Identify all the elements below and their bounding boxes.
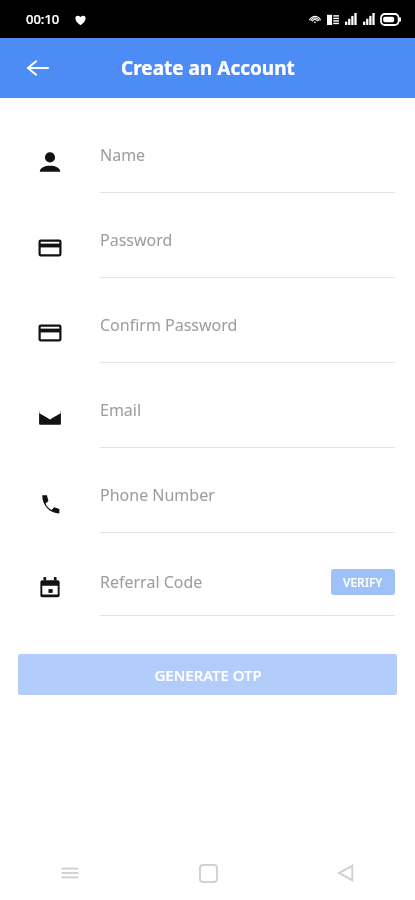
staticText: VERIFY <box>343 574 383 590</box>
button[interactable]: Phone Number <box>0 466 415 551</box>
button[interactable]: Back <box>277 846 415 900</box>
staticText: Phone Number <box>100 484 395 506</box>
button[interactable]: Email <box>0 381 415 466</box>
staticText: Confirm Password <box>100 314 395 336</box>
button[interactable]: Back <box>16 46 60 90</box>
button[interactable]: Home <box>139 846 277 900</box>
staticText: Email <box>100 399 395 421</box>
staticText: Name <box>100 144 395 166</box>
staticText: GENERATE OTP <box>154 665 262 685</box>
button[interactable]: Name <box>0 126 415 211</box>
staticText: 00:10 <box>26 10 60 28</box>
button[interactable]: GENERATE OTP <box>18 654 397 695</box>
button[interactable]: Password <box>0 211 415 296</box>
button[interactable]: Recent apps <box>0 846 139 900</box>
staticText: Create an Account <box>121 55 295 81</box>
button[interactable]: VERIFY <box>331 569 395 595</box>
staticText: Password <box>100 229 395 251</box>
button[interactable]: Confirm Password <box>0 296 415 381</box>
button[interactable]: Referral Code <box>0 551 415 636</box>
staticText: Referral Code <box>100 571 331 593</box>
